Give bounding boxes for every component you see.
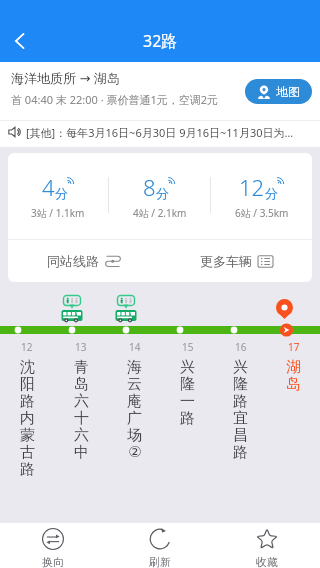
staticText: 换向 — [42, 555, 64, 568]
staticText: 蒙 — [20, 426, 35, 443]
staticText: 湖 — [286, 358, 301, 375]
staticText: 收藏 — [256, 555, 278, 568]
staticText: 地图 — [276, 84, 300, 99]
staticText: 宜 — [233, 409, 248, 426]
staticText: 沈 — [20, 358, 35, 375]
staticText: 六 — [74, 392, 89, 409]
staticText: 13 — [75, 340, 87, 354]
staticText: 一 — [180, 392, 195, 409]
staticText: 青 — [74, 358, 89, 375]
staticText: 4站 / 2.1km — [133, 206, 187, 220]
staticText: 刷新 — [149, 555, 171, 568]
staticText: 海 — [127, 358, 142, 375]
button[interactable]: 12 — [0, 340, 54, 477]
staticText: 3站 / 1.1km — [31, 206, 85, 220]
staticText: 岛 — [286, 375, 301, 392]
staticText: 隆 — [233, 375, 248, 392]
staticText: 路 — [20, 460, 35, 477]
staticText: 15 — [182, 340, 194, 354]
staticText: 17 — [288, 340, 300, 354]
staticText: 昌 — [233, 426, 248, 443]
staticText: 路 — [20, 392, 35, 409]
staticText: 兴 — [233, 358, 248, 375]
staticText: 分 — [55, 185, 68, 201]
staticText: 中 — [74, 443, 89, 460]
button[interactable]: 换向 — [0, 523, 106, 568]
button[interactable]: 8 — [109, 153, 210, 239]
button[interactable]: [其他]：每年3月16日~6月30日 9月16日~11月30日为… — [0, 121, 320, 147]
button[interactable]: 收藏 — [213, 523, 320, 568]
staticText: 内 — [20, 409, 35, 426]
button[interactable]: 13 — [54, 340, 108, 460]
staticText: 六 — [74, 426, 89, 443]
staticText: 16 — [235, 340, 247, 354]
staticText: 阳 — [20, 375, 35, 392]
button[interactable]: 更多车辆 — [160, 240, 312, 282]
button[interactable]: 15 — [161, 340, 214, 426]
staticText: 6站 / 3.5km — [235, 206, 289, 220]
staticText: 首 04:40 末 22:00 · 票价普通1元，空调2元 — [11, 92, 219, 107]
button[interactable]: 同站线路 — [8, 240, 160, 282]
staticText: 庵 — [127, 392, 142, 409]
staticText: 路 — [233, 392, 248, 409]
staticText: 12 — [21, 340, 33, 354]
staticText: ② — [128, 443, 142, 460]
button[interactable]: 16 — [214, 340, 267, 460]
staticText: [其他]：每年3月16日~6月30日 9月16日~11月30日为… — [26, 125, 294, 140]
staticText: 同站线路 — [47, 253, 99, 269]
staticText: 8 — [143, 172, 156, 202]
button[interactable]: 4 — [8, 153, 108, 239]
staticText: 场 — [127, 426, 142, 443]
staticText: 云 — [127, 375, 142, 392]
staticText: 海洋地质所 → 湖岛 — [11, 69, 120, 87]
staticText: 兴 — [180, 358, 195, 375]
button[interactable]: Back — [0, 20, 40, 62]
staticText: 14 — [129, 340, 141, 354]
staticText: 路 — [180, 409, 195, 426]
staticText: 分 — [156, 185, 169, 201]
button[interactable]: 17 — [267, 340, 320, 392]
staticText: 更多车辆 — [200, 253, 252, 269]
staticText: 分 — [265, 185, 278, 201]
button[interactable]: 地图 — [245, 79, 312, 104]
button[interactable]: 12 — [211, 153, 312, 239]
staticText: 32路 — [143, 30, 178, 52]
staticText: 十 — [74, 409, 89, 426]
button[interactable]: 刷新 — [106, 523, 213, 568]
staticText: 广 — [127, 409, 142, 426]
staticText: 岛 — [74, 375, 89, 392]
staticText: 12 — [239, 172, 265, 202]
staticText: 路 — [233, 443, 248, 460]
staticText: 4 — [42, 172, 55, 202]
staticText: 古 — [20, 443, 35, 460]
button[interactable]: 14 — [108, 340, 161, 460]
staticText: 隆 — [180, 375, 195, 392]
